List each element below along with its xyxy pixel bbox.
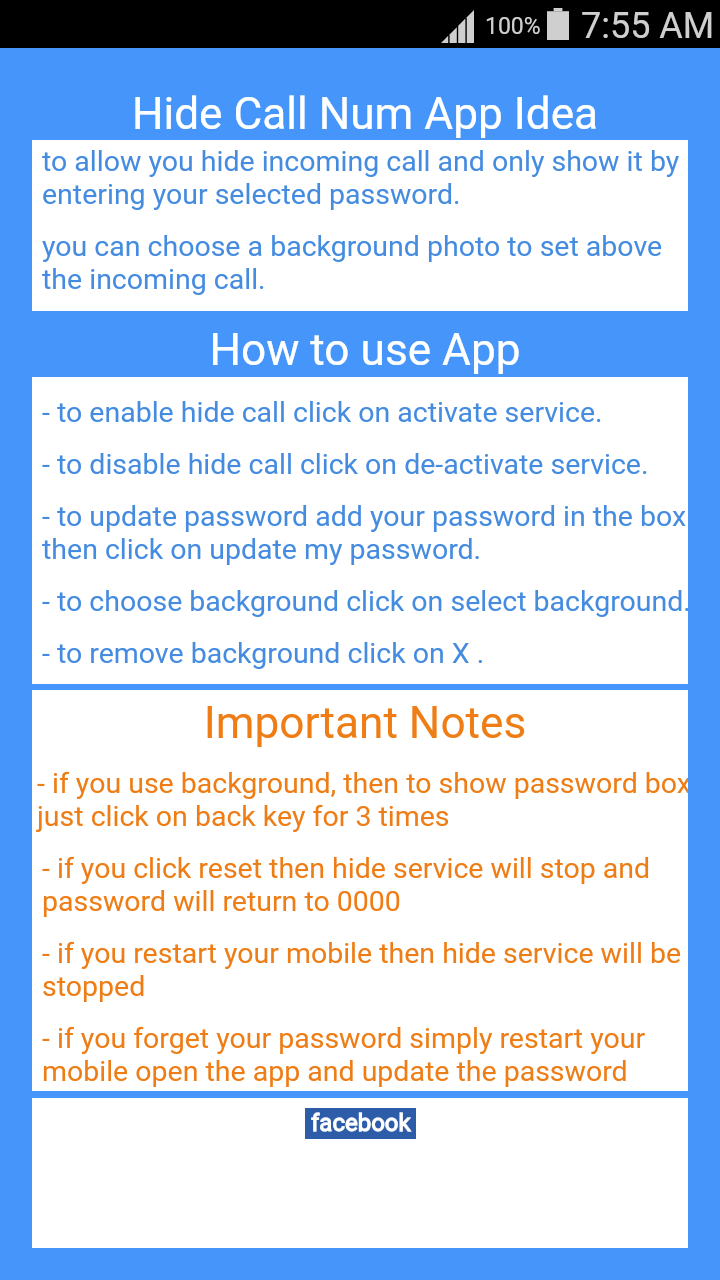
staticText: - to remove background click on X . [42, 637, 688, 670]
staticText: - to enable hide call click on activate … [42, 396, 688, 429]
button[interactable]: Facebook [305, 1108, 416, 1139]
other: Battery full [547, 8, 569, 40]
staticText: - to update password add your password i… [42, 500, 688, 566]
staticText: - if you use background, then to show pa… [37, 767, 688, 833]
staticText: - if you forget your password simply res… [42, 1022, 688, 1088]
staticText: - to choose background click on select b… [42, 585, 688, 618]
staticText: 7:55 AM [581, 5, 715, 47]
staticText: How to use App [5, 324, 720, 376]
staticText: 100% [485, 13, 541, 40]
staticText: - to disable hide call click on de-activ… [42, 448, 688, 481]
staticText: - if you click reset then hide service w… [42, 852, 688, 918]
staticText: to allow you hide incoming call and only… [42, 145, 688, 211]
staticText: Important Notes [37, 697, 688, 749]
staticText: facebook [311, 1109, 411, 1137]
staticText: Hide Call Num App Idea [5, 88, 720, 140]
staticText: - if you restart your mobile then hide s… [42, 937, 688, 1003]
staticText: you can choose a background photo to set… [42, 230, 688, 296]
other: Signal strength [441, 10, 474, 43]
